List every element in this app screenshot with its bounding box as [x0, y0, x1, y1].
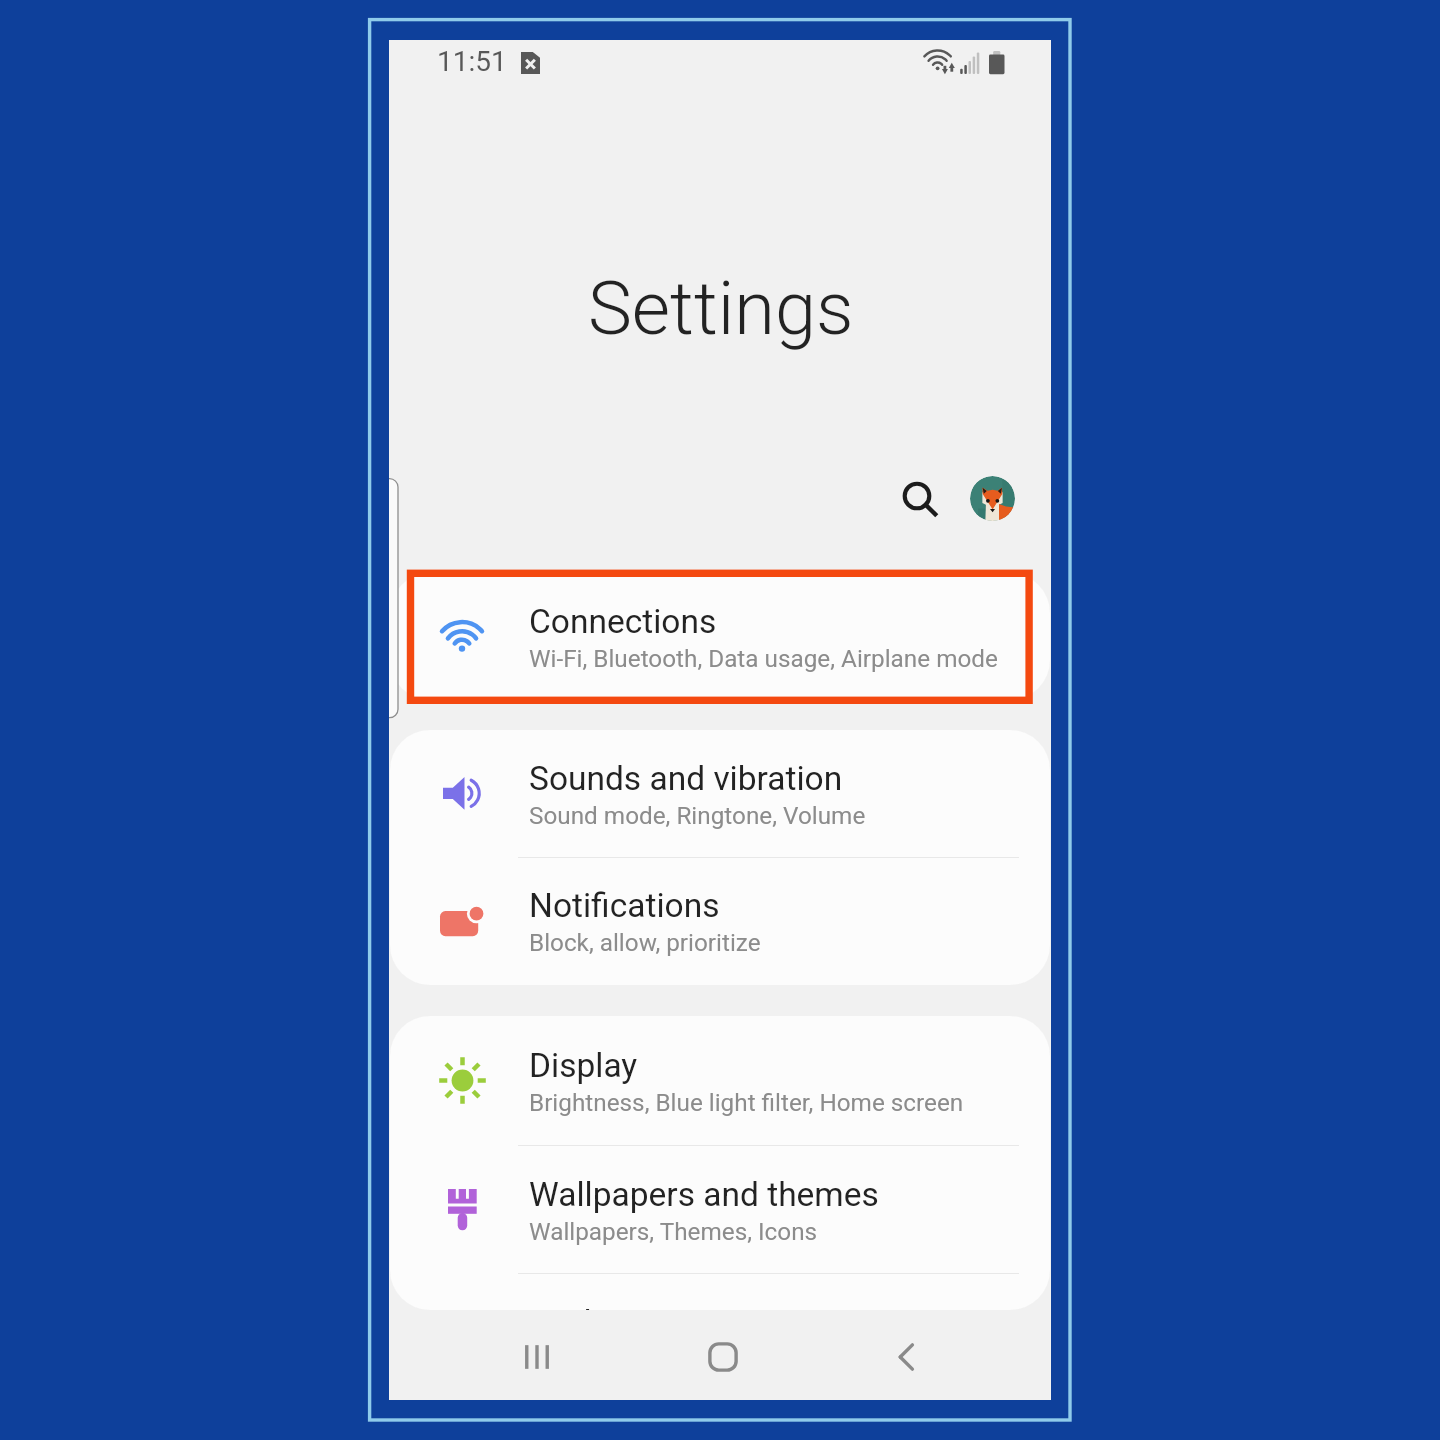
staticText: Wi-Fi, Bluetooth, Data usage, Airplane m… [529, 644, 998, 672]
staticText: Block, allow, prioritize [529, 928, 761, 956]
button[interactable]: Home [690, 1324, 756, 1390]
button[interactable]: Back [873, 1324, 939, 1390]
staticText: Wallpapers, Themes, Icons [529, 1217, 818, 1245]
button[interactable]: Notifications [390, 858, 1050, 984]
staticText: Connections [529, 602, 717, 641]
button[interactable]: Profile [948, 454, 1036, 542]
staticText: Wallpapers and themes [529, 1175, 879, 1214]
staticText: Display [529, 1046, 638, 1085]
staticText: Notifications [529, 886, 720, 925]
staticText: 11:51 [437, 45, 507, 78]
staticText: Settings [588, 265, 854, 352]
button[interactable]: Recents [504, 1324, 570, 1390]
staticText: Sound mode, Ringtone, Volume [529, 801, 866, 829]
button[interactable]: Connections [390, 573, 1050, 700]
staticText: Brightness, Blue light filter, Home scre… [529, 1088, 964, 1116]
staticText: Lock screen [529, 1303, 709, 1310]
button[interactable]: Display [390, 1016, 1050, 1145]
staticText: Sounds and vibration [529, 759, 843, 798]
button[interactable]: Sounds and vibration [390, 730, 1050, 857]
button[interactable]: Search [886, 465, 954, 533]
button[interactable]: Wallpapers and themes [390, 1146, 1050, 1273]
